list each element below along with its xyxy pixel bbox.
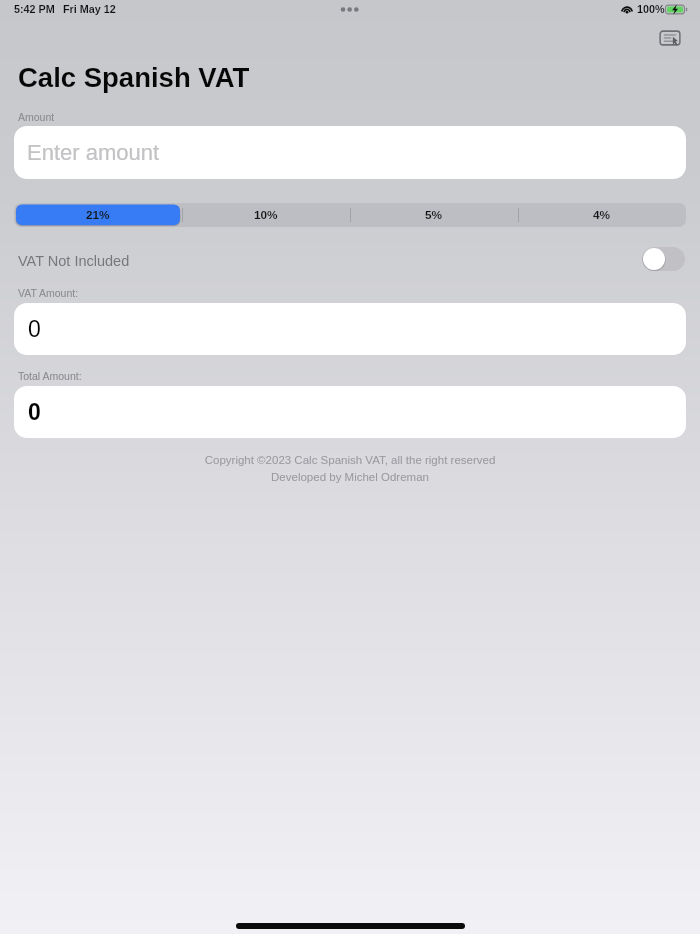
- staticText: Fri May 12: [63, 3, 116, 15]
- button[interactable]: VAT Not Included toggle: [642, 247, 685, 271]
- staticText: 5:42 PM: [14, 3, 55, 15]
- staticText: 21%: [86, 208, 110, 221]
- button[interactable]: Notes: [654, 26, 686, 50]
- staticText: 5%: [425, 208, 443, 221]
- button[interactable]: 4%: [518, 203, 686, 227]
- staticText: 4%: [593, 208, 611, 221]
- staticText: 0: [28, 316, 41, 342]
- staticText: 0: [28, 399, 41, 425]
- staticText: Enter amount: [27, 140, 160, 165]
- staticText: Total Amount:: [18, 370, 82, 382]
- button[interactable]: 0: [14, 386, 686, 438]
- staticText: 10%: [254, 208, 278, 221]
- staticText: Copyright ©2023 Calc Spanish VAT, all th…: [0, 454, 700, 467]
- button[interactable]: 21%: [14, 203, 182, 227]
- staticText: Calc Spanish VAT: [18, 62, 250, 93]
- staticText: VAT Amount:: [18, 287, 79, 299]
- staticText: VAT Not Included: [18, 253, 130, 269]
- button[interactable]: 10%: [182, 203, 350, 227]
- button[interactable]: 0: [14, 303, 686, 355]
- button[interactable]: Enter amount: [14, 126, 686, 179]
- staticText: Amount: [18, 111, 55, 123]
- button[interactable]: 5%: [350, 203, 518, 227]
- staticText: 100%: [637, 3, 665, 15]
- staticText: Developed by Michel Odreman: [0, 471, 700, 484]
